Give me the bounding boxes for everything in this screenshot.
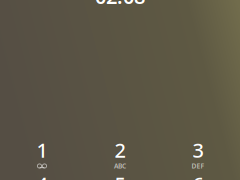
staticText: DEF — [191, 162, 204, 170]
button[interactable]: 1 — [3, 136, 81, 170]
staticText: 5 — [114, 171, 125, 180]
staticText: 1 — [36, 137, 47, 163]
button[interactable]: 5 — [81, 170, 159, 180]
staticText: 3 — [192, 137, 203, 163]
button[interactable]: 6 — [159, 170, 237, 180]
staticText: 6 — [192, 171, 203, 180]
staticText: 4 — [36, 171, 47, 180]
staticText: ABC — [114, 162, 126, 170]
button[interactable]: 3 — [159, 136, 237, 170]
button[interactable]: 2 — [81, 136, 159, 170]
button[interactable]: 4 — [3, 170, 81, 180]
staticText: 02:08 — [95, 0, 145, 10]
staticText: 2 — [114, 137, 125, 163]
